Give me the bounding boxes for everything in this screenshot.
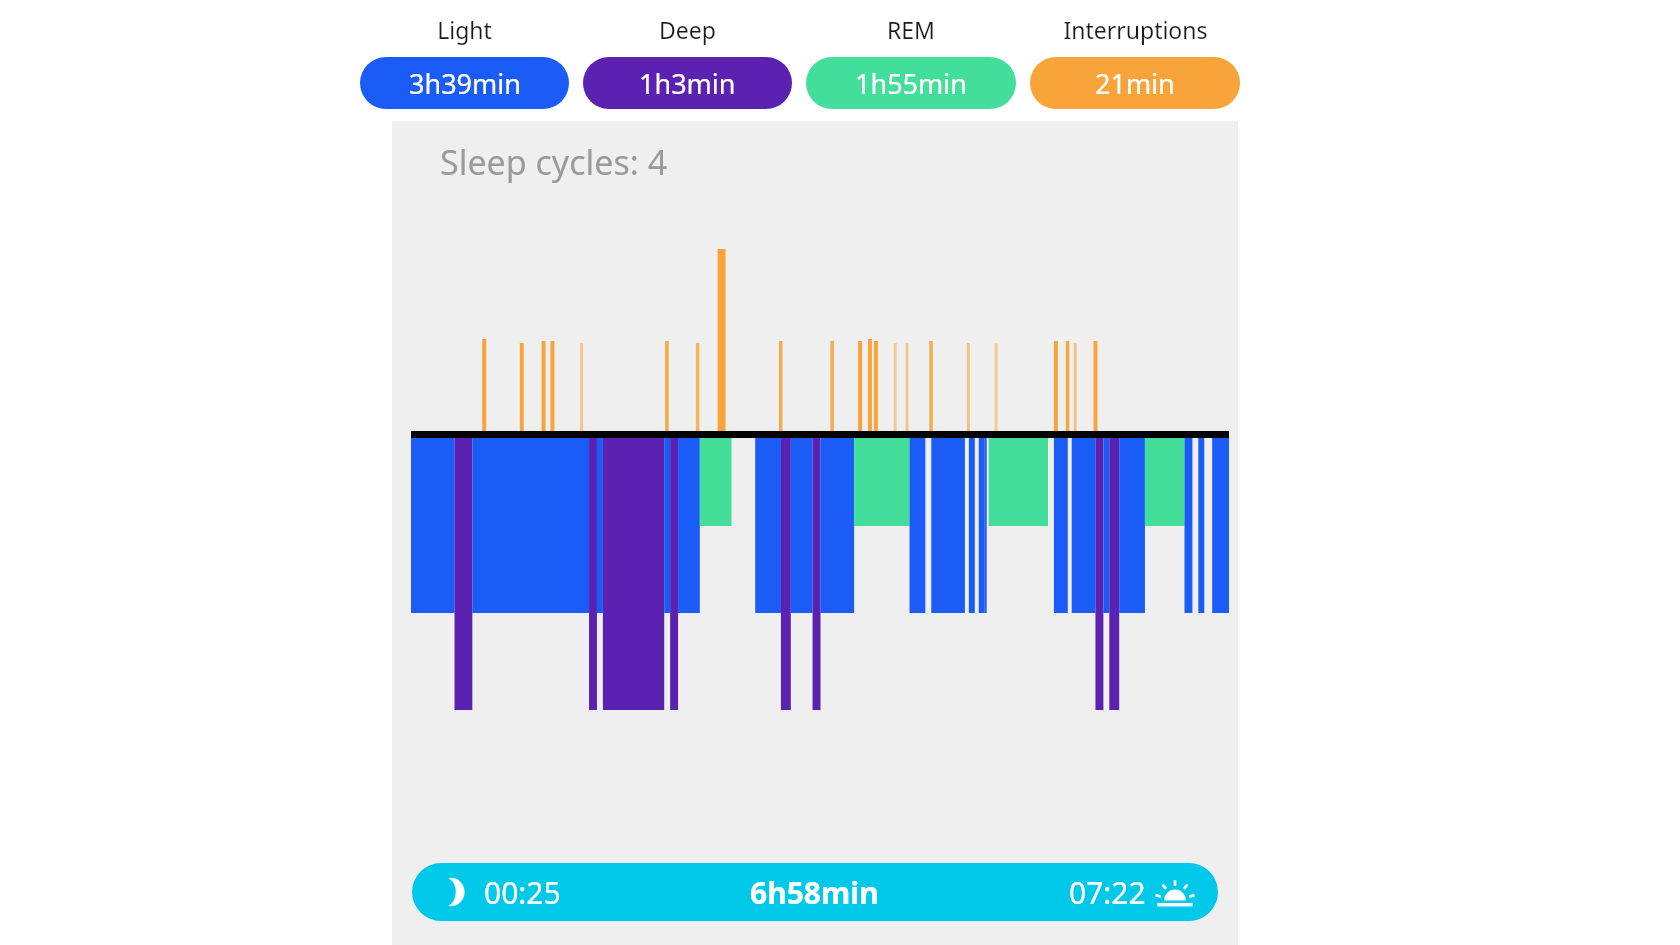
staticText: 3h39min <box>409 65 521 102</box>
staticText: 07:22 <box>1069 872 1146 913</box>
button[interactable]: Bedtime <box>412 863 1218 921</box>
staticText: 6h58min <box>750 872 879 913</box>
staticText: Sleep cycles: 4 <box>440 139 668 185</box>
other: Wake up <box>1154 871 1196 913</box>
button[interactable]: 1h55min <box>806 57 1016 109</box>
staticText: REM <box>887 14 935 45</box>
staticText: Light <box>437 14 492 45</box>
staticText: 21min <box>1095 65 1175 102</box>
button[interactable]: 21min <box>1030 57 1240 109</box>
other: Bedtime <box>434 875 468 909</box>
staticText: 1h55min <box>855 65 967 102</box>
button[interactable]: 1h3min <box>583 57 792 109</box>
button[interactable]: 3h39min <box>360 57 569 109</box>
staticText: Interruptions <box>1063 14 1208 45</box>
staticText: Deep <box>659 14 716 45</box>
staticText: 00:25 <box>484 872 561 913</box>
staticText: 1h3min <box>639 65 736 102</box>
